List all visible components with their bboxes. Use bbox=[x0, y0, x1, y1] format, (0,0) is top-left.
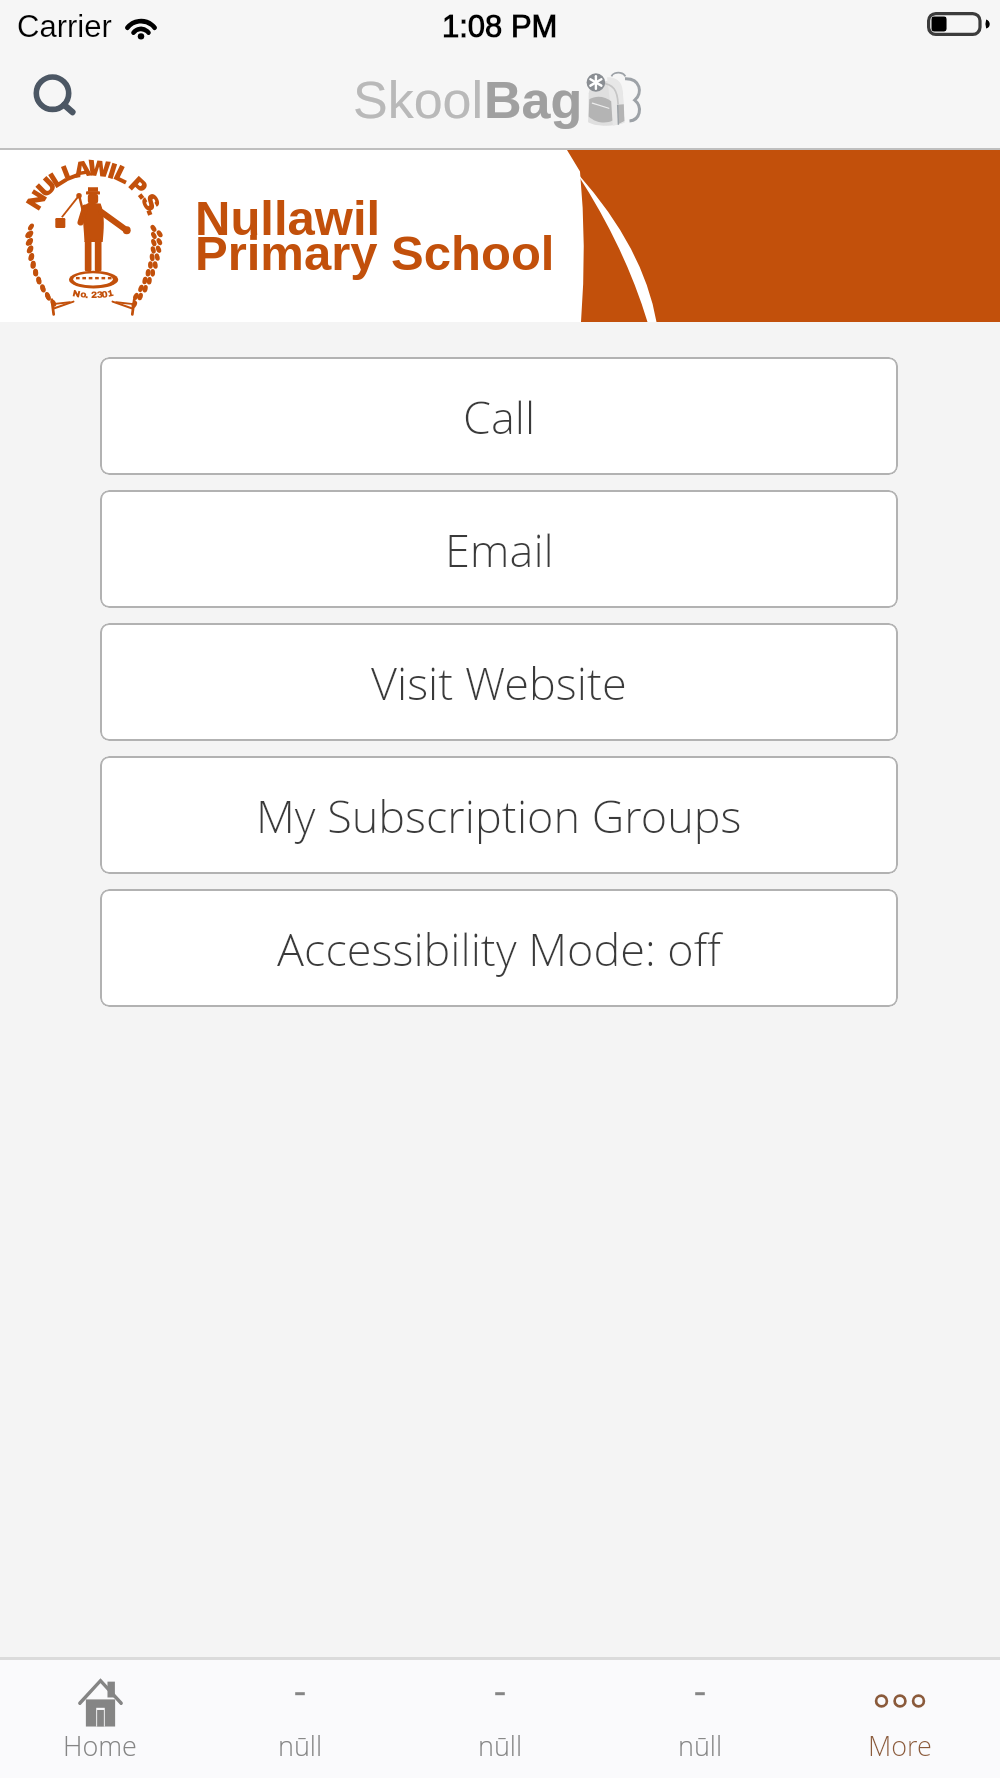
staticText: nūll bbox=[278, 1727, 323, 1764]
button[interactable]: nūll bbox=[400, 1660, 600, 1778]
staticText: Bag bbox=[484, 71, 583, 129]
button[interactable]: Call bbox=[100, 357, 898, 475]
staticText: Skool bbox=[353, 71, 484, 129]
staticText: Carrier bbox=[17, 9, 112, 44]
button[interactable]: Home bbox=[0, 1660, 200, 1778]
button[interactable]: My Subscription Groups bbox=[100, 756, 898, 874]
staticText: nūll bbox=[678, 1727, 723, 1764]
staticText: Call bbox=[463, 386, 536, 447]
button[interactable]: nūll bbox=[200, 1660, 400, 1778]
staticText: My Subscription Groups bbox=[256, 785, 742, 846]
button[interactable]: Visit Website bbox=[100, 623, 898, 741]
button[interactable]: Email bbox=[100, 490, 898, 608]
staticText: nūll bbox=[478, 1727, 523, 1764]
button[interactable]: Accessibility Mode: off bbox=[100, 889, 898, 1007]
button[interactable]: nūll bbox=[600, 1660, 800, 1778]
staticText: Primary School bbox=[195, 226, 555, 281]
staticText: Nullawil bbox=[195, 191, 381, 246]
staticText: Accessibility Mode: off bbox=[277, 918, 721, 979]
staticText: 1:08 PM bbox=[442, 9, 558, 44]
staticText: Home bbox=[63, 1727, 137, 1764]
button[interactable]: More bbox=[800, 1660, 1000, 1778]
button[interactable]: Search bbox=[22, 66, 94, 138]
staticText: More bbox=[868, 1727, 932, 1764]
staticText: Visit Website bbox=[371, 652, 627, 713]
staticText: Email bbox=[445, 519, 554, 580]
